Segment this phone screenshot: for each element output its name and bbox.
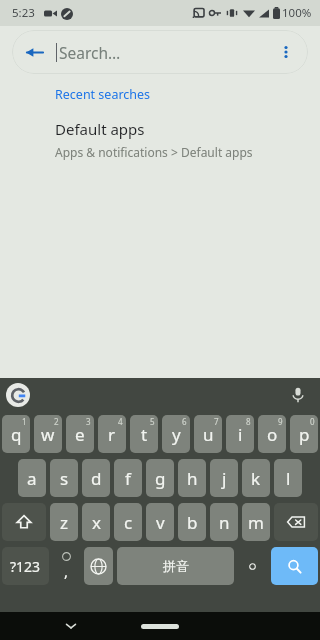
button[interactable]: o bbox=[258, 415, 286, 453]
button[interactable]: Shift bbox=[2, 503, 46, 541]
staticText: z bbox=[60, 511, 68, 534]
staticText: n bbox=[219, 511, 230, 534]
button[interactable]: Period bbox=[238, 547, 267, 585]
button[interactable]: b bbox=[178, 503, 206, 541]
button[interactable]: e bbox=[66, 415, 94, 453]
staticText: s bbox=[60, 467, 69, 490]
staticText: 100% bbox=[282, 5, 312, 21]
staticText: i bbox=[238, 423, 243, 446]
staticText: Default apps bbox=[55, 119, 145, 139]
button[interactable]: Comma bbox=[53, 547, 80, 585]
staticText: 1 bbox=[22, 416, 27, 427]
staticText: Recent searches bbox=[55, 86, 151, 103]
staticText: e bbox=[75, 423, 85, 446]
staticText: Apps & notifications > Default apps bbox=[55, 144, 253, 160]
button[interactable]: Search… bbox=[56, 30, 264, 74]
button[interactable]: y bbox=[162, 415, 190, 453]
button[interactable]: s bbox=[50, 459, 78, 497]
button[interactable]: i bbox=[226, 415, 254, 453]
button[interactable]: Default apps bbox=[0, 117, 320, 168]
button[interactable]: v bbox=[146, 503, 174, 541]
button[interactable]: 拼音 bbox=[117, 547, 234, 585]
button[interactable]: More options bbox=[264, 30, 308, 74]
staticText: l bbox=[286, 467, 291, 490]
button[interactable]: a bbox=[18, 459, 46, 497]
button[interactable]: j bbox=[210, 459, 238, 497]
staticText: t bbox=[141, 423, 148, 446]
button[interactable]: p bbox=[290, 415, 318, 453]
button[interactable]: n bbox=[210, 503, 238, 541]
staticText: x bbox=[92, 511, 101, 534]
button[interactable]: t bbox=[130, 415, 158, 453]
button[interactable]: Symbols bbox=[2, 547, 49, 585]
staticText: m bbox=[248, 511, 264, 534]
button[interactable]: q bbox=[2, 415, 30, 453]
button[interactable]: w bbox=[34, 415, 62, 453]
button[interactable]: Search bbox=[271, 547, 318, 585]
button[interactable]: h bbox=[178, 459, 206, 497]
staticText: 7 bbox=[214, 416, 219, 427]
staticText: c bbox=[124, 511, 133, 534]
staticText: 5 bbox=[150, 416, 155, 427]
staticText: k bbox=[251, 467, 261, 490]
button[interactable]: Home bbox=[141, 624, 179, 629]
staticText: 2 bbox=[54, 416, 59, 427]
staticText: ?123 bbox=[10, 557, 41, 576]
button[interactable]: Backspace bbox=[274, 503, 318, 541]
staticText: j bbox=[222, 467, 227, 490]
staticText: , bbox=[64, 561, 69, 581]
staticText: 8 bbox=[246, 416, 251, 427]
button[interactable]: Recent searches bbox=[55, 86, 151, 103]
button[interactable]: Hide keyboard bbox=[56, 612, 86, 640]
button[interactable]: Voice input bbox=[284, 381, 312, 409]
button[interactable]: r bbox=[98, 415, 126, 453]
staticText: d bbox=[91, 467, 102, 490]
button[interactable]: d bbox=[82, 459, 110, 497]
button[interactable]: m bbox=[242, 503, 270, 541]
staticText: q bbox=[11, 423, 22, 446]
staticText: 拼音 bbox=[163, 558, 189, 574]
staticText: 9 bbox=[278, 416, 283, 427]
button[interactable]: Change language bbox=[84, 547, 113, 585]
button[interactable]: c bbox=[114, 503, 142, 541]
staticText: u bbox=[203, 423, 214, 446]
button[interactable]: Google bbox=[6, 383, 30, 407]
staticText: 0 bbox=[310, 416, 315, 427]
staticText: o bbox=[267, 423, 278, 446]
button[interactable]: k bbox=[242, 459, 270, 497]
button[interactable]: x bbox=[82, 503, 110, 541]
staticText: 6 bbox=[182, 416, 187, 427]
button[interactable]: g bbox=[146, 459, 174, 497]
button[interactable]: f bbox=[114, 459, 142, 497]
staticText: w bbox=[41, 423, 55, 446]
button[interactable]: Back bbox=[12, 30, 56, 74]
staticText: f bbox=[125, 467, 131, 490]
staticText: r bbox=[108, 423, 116, 446]
staticText: v bbox=[156, 511, 165, 534]
button[interactable]: u bbox=[194, 415, 222, 453]
staticText: b bbox=[187, 511, 198, 534]
button[interactable]: z bbox=[50, 503, 78, 541]
staticText: p bbox=[299, 423, 310, 446]
staticText: 3 bbox=[86, 416, 91, 427]
staticText: a bbox=[27, 467, 37, 490]
staticText: y bbox=[172, 423, 181, 446]
staticText: 4 bbox=[118, 416, 123, 427]
staticText: 5:23 bbox=[12, 5, 35, 21]
staticText: g bbox=[155, 467, 166, 490]
staticText: Search… bbox=[59, 42, 121, 63]
staticText: h bbox=[187, 467, 198, 490]
button[interactable]: l bbox=[274, 459, 302, 497]
